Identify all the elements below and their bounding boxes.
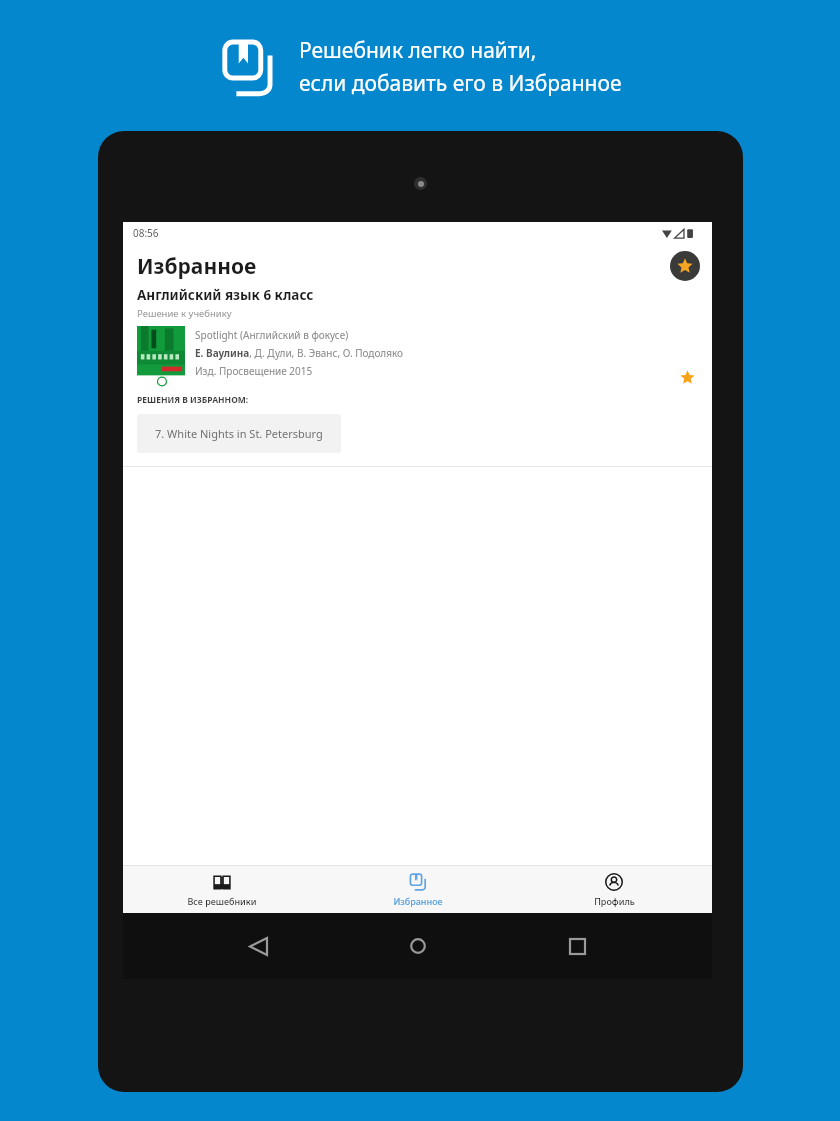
button[interactable]: Back: [234, 922, 282, 970]
button[interactable]: 7. White Nights in St. Petersburg: [137, 414, 341, 453]
staticText: Английский язык 6 класс: [137, 286, 314, 304]
staticText: Spotlight (Английский в фокусе): [195, 328, 349, 342]
staticText: Все решебники: [187, 895, 257, 907]
button[interactable]: Home: [394, 922, 442, 970]
button[interactable]: Recents: [553, 922, 601, 970]
staticText: Профиль: [594, 895, 635, 907]
staticText: РЕШЕНИЯ В ИЗБРАННОМ:: [137, 394, 249, 406]
staticText: Решебник легко найти,: [299, 36, 537, 65]
staticText: Е. Ваулина, Д. Дули, В. Эванс, О. Подоля…: [195, 346, 404, 360]
button[interactable]: Все решебники: [123, 866, 320, 913]
staticText: Избранное: [393, 895, 443, 907]
button[interactable]: Remove from favorites: [674, 364, 700, 390]
button[interactable]: Избранное: [320, 866, 516, 913]
button[interactable]: Профиль: [516, 866, 712, 913]
staticText: Решение к учебнику: [137, 307, 232, 320]
staticText: Изд. Просвещение 2015: [195, 364, 313, 378]
staticText: 7. White Nights in St. Petersburg: [155, 426, 323, 441]
staticText: 08:56: [133, 226, 159, 240]
button[interactable]: Favorites filter: [670, 251, 700, 281]
staticText: Избранное: [137, 252, 257, 281]
staticText: если добавить его в Избранное: [299, 69, 622, 98]
